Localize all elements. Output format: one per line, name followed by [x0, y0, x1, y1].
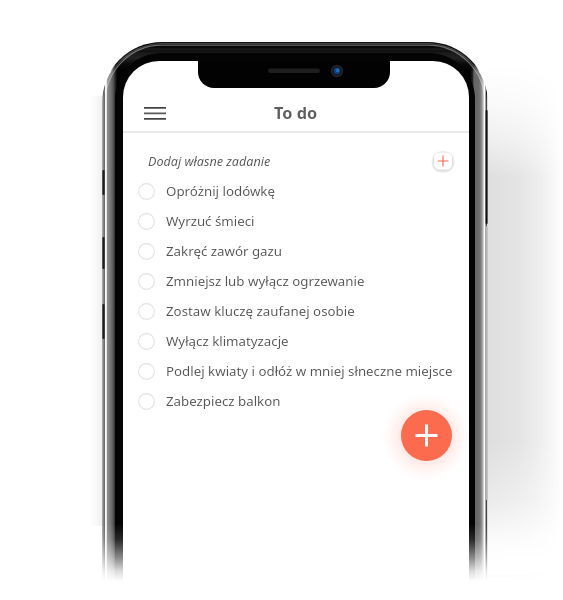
staticText: Wyłącz klimatyzacje: [166, 332, 289, 350]
staticText: Dodaj własne zadanie: [148, 153, 271, 170]
button[interactable]: Wyrzuć śmieci: [123, 206, 469, 236]
staticText: Zakręć zawór gazu: [166, 242, 282, 260]
staticText: Zostaw kluczę zaufanej osobie: [166, 302, 355, 320]
button[interactable]: Zabezpiecz balkon: [123, 386, 469, 416]
button[interactable]: Zostaw kluczę zaufanej osobie: [123, 296, 469, 326]
button[interactable]: Podlej kwiaty i odłóż w mniej słneczne m…: [123, 356, 469, 386]
staticText: Zabezpiecz balkon: [166, 392, 281, 410]
button[interactable]: Add task: [431, 149, 455, 173]
button[interactable]: Opróżnij lodówkę: [123, 176, 469, 206]
button[interactable]: Add: [401, 410, 452, 461]
staticText: Zmniejsz lub wyłącz ogrzewanie: [166, 272, 365, 290]
staticText: Wyrzuć śmieci: [166, 212, 255, 230]
button[interactable]: Zakręć zawór gazu: [123, 236, 469, 266]
staticText: Podlej kwiaty i odłóż w mniej słneczne m…: [166, 362, 453, 380]
button[interactable]: Wyłącz klimatyzacje: [123, 326, 469, 356]
staticText: To do: [274, 102, 318, 124]
button[interactable]: Menu: [137, 95, 173, 131]
button[interactable]: Zmniejsz lub wyłącz ogrzewanie: [123, 266, 469, 296]
staticText: Opróżnij lodówkę: [166, 182, 275, 200]
